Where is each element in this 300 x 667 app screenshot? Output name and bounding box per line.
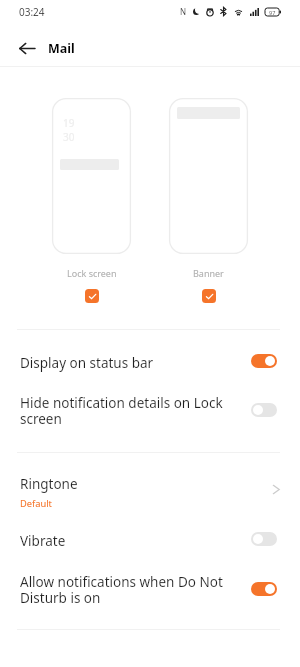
staticText: Lock screen — [67, 267, 117, 279]
button[interactable]: Lock screen enabled — [85, 289, 99, 303]
staticText: Ringtone — [20, 475, 78, 493]
button[interactable]: Display on status bar — [0, 329, 300, 391]
staticText: 03:24 — [19, 5, 45, 19]
button[interactable]: Banner enabled — [202, 289, 216, 303]
staticText: Default — [20, 497, 52, 510]
staticText: N — [180, 6, 187, 17]
staticText: Banner — [193, 267, 224, 279]
staticText: Vibrate — [20, 532, 224, 550]
staticText: Hide notification details on Lock screen — [20, 394, 224, 428]
staticText: 97 — [269, 9, 276, 16]
staticText: 19 — [63, 116, 75, 130]
button[interactable]: Allow notifications when Do Not Disturb … — [0, 570, 300, 629]
staticText: Display on status bar — [20, 354, 224, 372]
staticText: 30 — [63, 130, 75, 144]
button[interactable]: Back — [9, 31, 44, 66]
button[interactable]: Vibrate — [0, 511, 300, 570]
staticText: Allow notifications when Do Not Disturb … — [20, 573, 224, 607]
staticText: Mail — [48, 40, 75, 57]
button[interactable]: Hide notification details on Lock screen — [0, 391, 300, 452]
button[interactable]: Ringtone — [0, 452, 300, 511]
